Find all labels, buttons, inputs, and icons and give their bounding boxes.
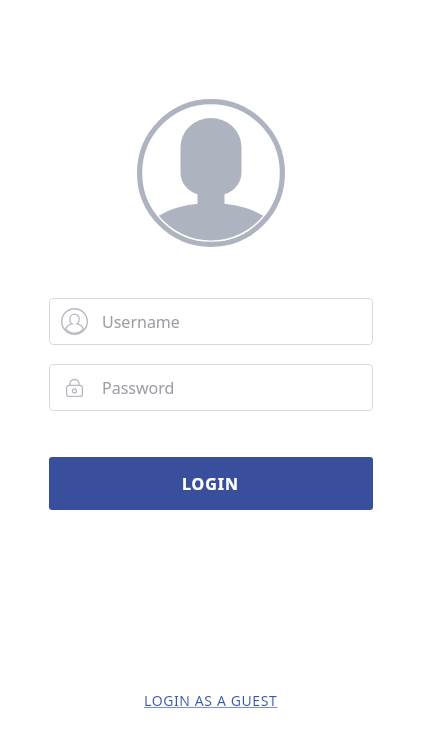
button[interactable]: LOGIN AS A GUEST bbox=[136, 687, 286, 714]
button[interactable]: LOGIN bbox=[49, 457, 373, 510]
staticText: LOGIN AS A GUEST bbox=[144, 691, 278, 710]
staticText: Password bbox=[102, 377, 175, 399]
button[interactable]: Password bbox=[49, 364, 373, 411]
staticText: Username bbox=[102, 311, 180, 333]
button[interactable]: Username bbox=[49, 298, 373, 345]
staticText: LOGIN bbox=[182, 473, 240, 495]
